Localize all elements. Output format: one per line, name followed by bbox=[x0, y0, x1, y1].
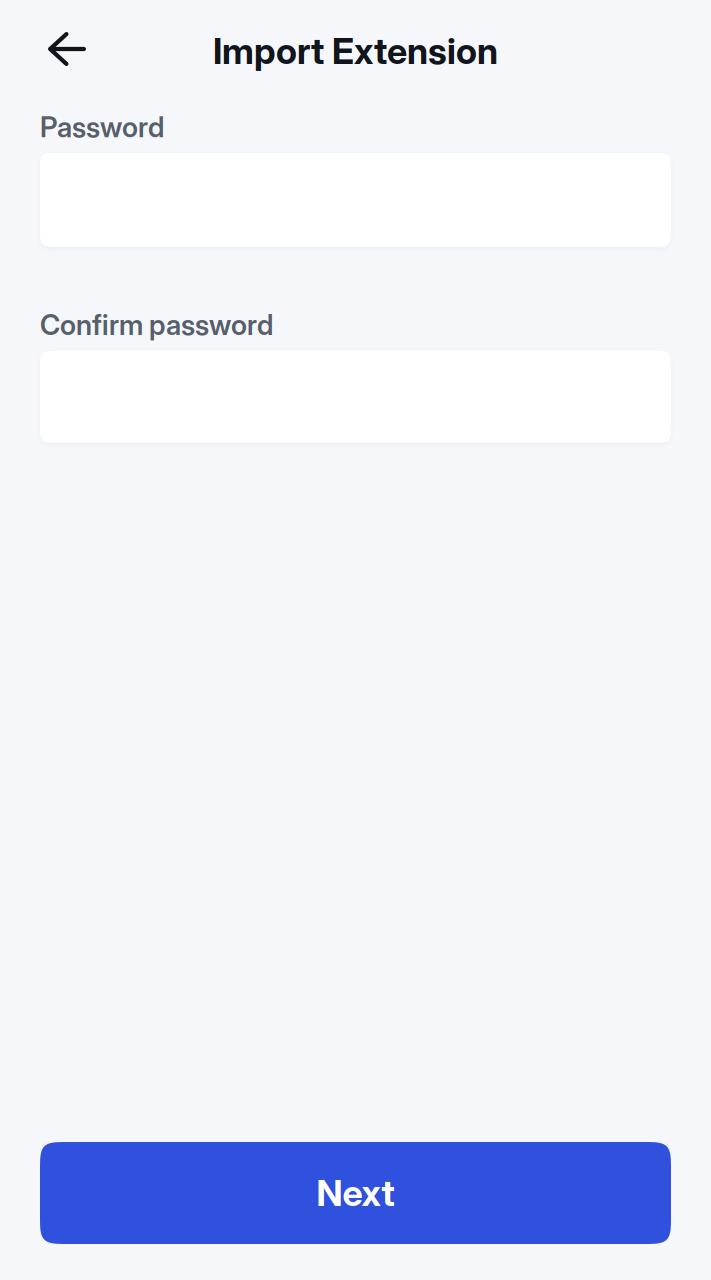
staticText: Password bbox=[40, 110, 164, 144]
staticText: Confirm password bbox=[40, 308, 273, 342]
button[interactable]: Next bbox=[40, 1142, 671, 1244]
button[interactable]: Back bbox=[40, 20, 106, 81]
staticText: Next bbox=[316, 1171, 394, 1215]
staticText: Import Extension bbox=[213, 29, 498, 73]
